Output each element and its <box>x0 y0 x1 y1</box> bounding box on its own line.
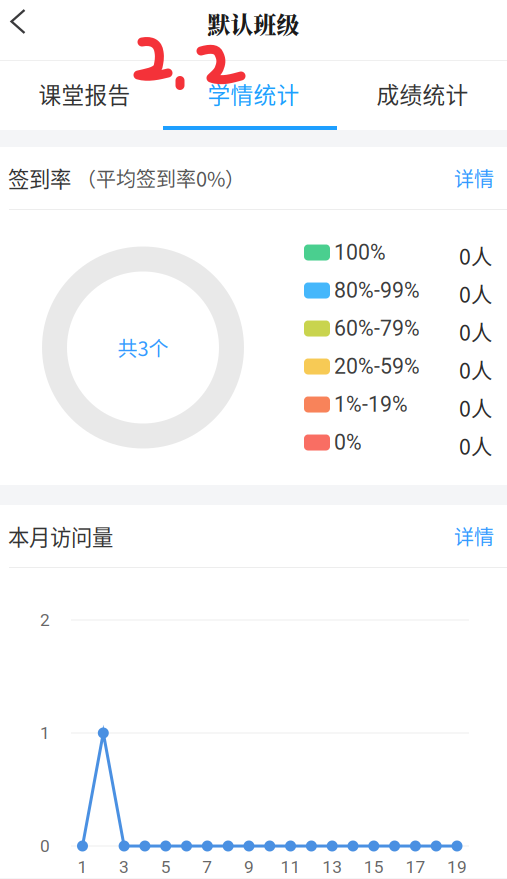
staticText: 0人 <box>459 278 492 309</box>
staticText: 1 <box>40 723 50 743</box>
staticText: 详情 <box>454 521 494 550</box>
staticText: 1%-19% <box>334 392 408 417</box>
button[interactable]: 详情 <box>430 153 494 202</box>
staticText: 成绩统计 <box>376 77 468 110</box>
staticText: 2 <box>40 610 50 630</box>
staticText: 详情 <box>454 163 494 192</box>
staticText: 20%-59% <box>334 354 420 379</box>
staticText: 9 <box>244 857 254 877</box>
staticText: 60%-79% <box>334 316 420 341</box>
staticText: 0人 <box>459 430 492 461</box>
staticText: 0人 <box>459 316 492 347</box>
staticText: 签到率 <box>8 163 71 193</box>
button[interactable]: 成绩统计 <box>338 60 507 126</box>
staticText: 100% <box>334 240 386 265</box>
staticText: 课堂报告 <box>38 77 130 110</box>
staticText: 1 <box>77 857 87 877</box>
staticText: 默认班级 <box>207 7 299 40</box>
staticText: （平均签到率0%） <box>76 163 245 192</box>
staticText: 学情统计 <box>207 77 299 110</box>
staticText: 本月访问量 <box>8 521 113 551</box>
staticText: 共3个 <box>117 333 168 362</box>
staticText: 0人 <box>459 240 492 271</box>
staticText: 11 <box>281 857 301 877</box>
staticText: 7 <box>202 857 212 877</box>
button[interactable]: 学情统计 <box>169 60 338 126</box>
staticText: 15 <box>364 857 384 877</box>
staticText: 5 <box>161 857 171 877</box>
staticText: 17 <box>405 857 425 877</box>
button[interactable]: 详情 <box>430 511 494 560</box>
staticText: 0% <box>334 430 362 455</box>
button[interactable]: Back <box>0 0 44 60</box>
staticText: 3 <box>119 857 129 877</box>
staticText: 19 <box>447 857 467 877</box>
staticText: 0人 <box>459 392 492 423</box>
staticText: 0 <box>40 836 50 856</box>
staticText: 0人 <box>459 354 492 385</box>
staticText: 13 <box>322 857 342 877</box>
button[interactable]: 课堂报告 <box>0 60 169 126</box>
staticText: 80%-99% <box>334 278 420 303</box>
